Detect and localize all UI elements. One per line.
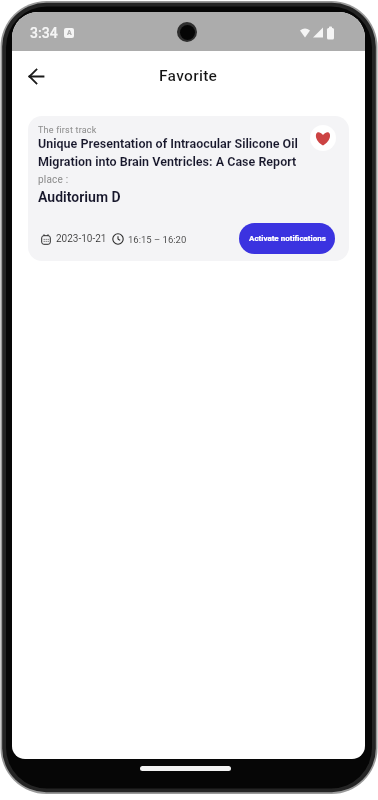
staticText: The first track <box>38 125 97 136</box>
button[interactable]: Activate notifications <box>239 223 335 254</box>
staticText: Activate notifications <box>249 234 326 243</box>
staticText: Favorite <box>159 67 218 85</box>
staticText: place : <box>38 174 69 186</box>
button[interactable] <box>310 125 336 151</box>
staticText: A <box>67 29 72 37</box>
staticText: Auditorium D <box>38 189 121 205</box>
button[interactable]: The first track <box>28 116 349 261</box>
staticText: Unique Presentation of Intraocular Silic… <box>38 136 307 169</box>
staticText: 3:34 <box>30 25 58 41</box>
staticText: 2023-10-21 <box>56 233 107 245</box>
staticText: 16:15 – 16:20 <box>128 234 187 245</box>
button[interactable] <box>20 60 52 92</box>
